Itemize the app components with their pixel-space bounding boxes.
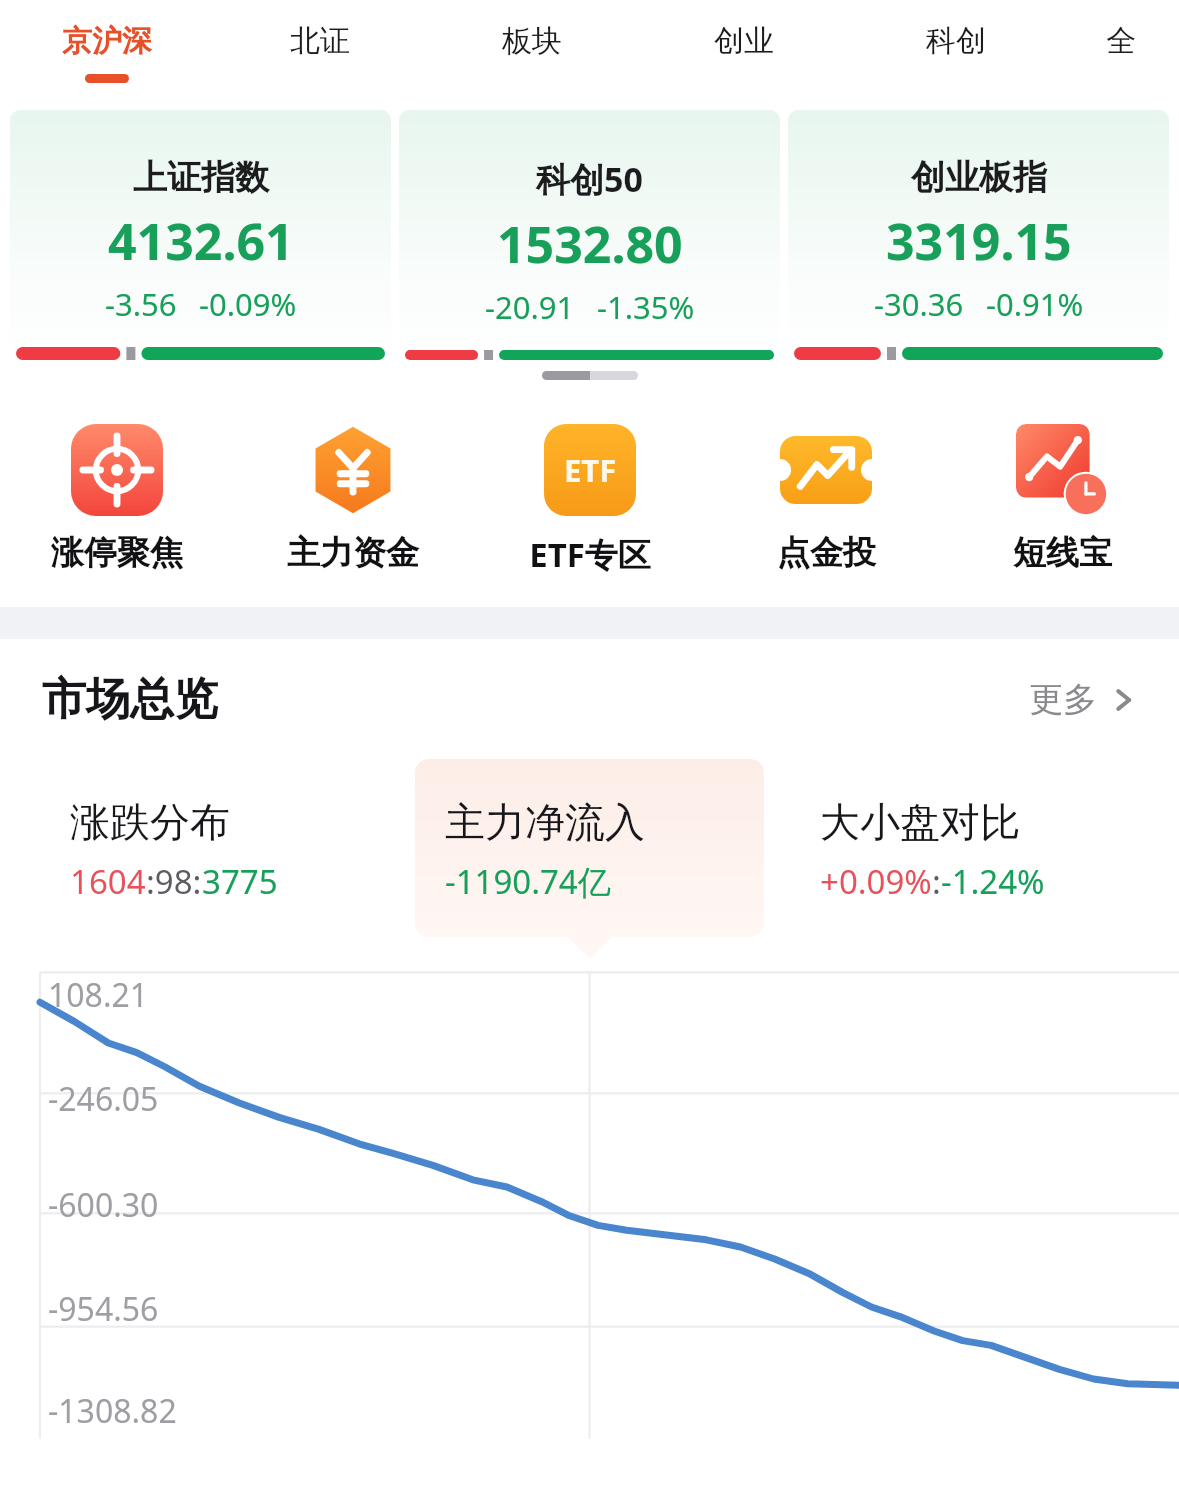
staticText: 短线宝 bbox=[1013, 532, 1112, 574]
staticText: 1532.80 bbox=[497, 210, 683, 278]
other: ETF专区 bbox=[544, 424, 636, 516]
button[interactable]: 涨停聚焦 bbox=[22, 424, 212, 574]
staticText: : bbox=[932, 859, 941, 904]
button[interactable]: 主力净流入 bbox=[445, 797, 764, 937]
staticText: 全 bbox=[1106, 22, 1136, 60]
button[interactable]: ETF专区 bbox=[495, 424, 685, 577]
staticText: -1308.82 bbox=[48, 1389, 177, 1433]
staticText: 科创50 bbox=[536, 156, 643, 202]
other: 涨停聚焦 bbox=[71, 424, 163, 516]
staticText: 创业 bbox=[714, 22, 774, 60]
staticText: 创业板指 bbox=[911, 156, 1047, 199]
staticText: 主力净流入 bbox=[445, 797, 645, 847]
staticText: 北证 bbox=[290, 22, 350, 60]
staticText: 点金投 bbox=[777, 532, 876, 574]
staticText: 主力资金 bbox=[287, 532, 419, 574]
staticText: 涨跌分布 bbox=[70, 797, 230, 847]
button[interactable]: 科创 bbox=[850, 0, 1062, 110]
staticText: ETF专区 bbox=[529, 532, 651, 577]
staticText: 科创 bbox=[926, 22, 986, 60]
staticText: 1604 bbox=[70, 859, 146, 904]
staticText: -0.91% bbox=[986, 283, 1084, 325]
staticText: 板块 bbox=[502, 22, 562, 60]
other: 主力资金 bbox=[307, 424, 399, 516]
button[interactable]: 创业 bbox=[638, 0, 850, 110]
staticText: 3775 bbox=[202, 859, 278, 904]
staticText: -1190.74亿 bbox=[445, 859, 611, 904]
button[interactable]: 上证指数 bbox=[10, 110, 391, 360]
button[interactable]: 京沪深 bbox=[0, 0, 213, 110]
button[interactable]: 涨跌分布 bbox=[70, 797, 389, 937]
staticText: -1.35% bbox=[597, 286, 695, 328]
button[interactable]: 全 bbox=[1062, 0, 1179, 110]
staticText: -246.05 bbox=[48, 1077, 159, 1121]
button[interactable]: 更多 bbox=[1029, 678, 1137, 721]
button[interactable]: 点金投 bbox=[731, 424, 921, 574]
staticText: -0.09% bbox=[199, 283, 297, 325]
button[interactable]: 短线宝 bbox=[967, 424, 1157, 574]
staticText: 上证指数 bbox=[133, 156, 269, 199]
button[interactable]: 大小盘对比 bbox=[820, 797, 1139, 937]
staticText: -1.24% bbox=[941, 859, 1045, 904]
staticText: 108.21 bbox=[48, 973, 149, 1017]
staticText: 3319.15 bbox=[886, 207, 1072, 275]
staticText: -954.56 bbox=[48, 1287, 159, 1331]
staticText: -600.30 bbox=[48, 1183, 159, 1227]
staticText: 涨停聚焦 bbox=[51, 532, 183, 574]
staticText: 京沪深 bbox=[62, 22, 152, 60]
other: 点金投 bbox=[780, 424, 872, 516]
button[interactable]: 板块 bbox=[426, 0, 638, 110]
button[interactable]: 创业板指 bbox=[788, 110, 1169, 360]
button[interactable]: 科创50 bbox=[399, 110, 780, 360]
staticText: 大小盘对比 bbox=[820, 797, 1020, 847]
staticText: ETF bbox=[564, 449, 617, 491]
button[interactable]: 北证 bbox=[213, 0, 426, 110]
staticText: 市场总览 bbox=[42, 672, 218, 727]
staticText: +0.09% bbox=[820, 859, 932, 904]
staticText: -20.91 bbox=[485, 286, 575, 328]
button[interactable]: 主力资金 bbox=[258, 424, 448, 574]
staticText: :98: bbox=[146, 859, 202, 904]
staticText: -30.36 bbox=[874, 283, 964, 325]
staticText: 4132.61 bbox=[108, 207, 294, 275]
other: 短线宝 bbox=[1016, 424, 1108, 516]
staticText: 更多 bbox=[1029, 678, 1097, 721]
staticText: -3.56 bbox=[105, 283, 177, 325]
